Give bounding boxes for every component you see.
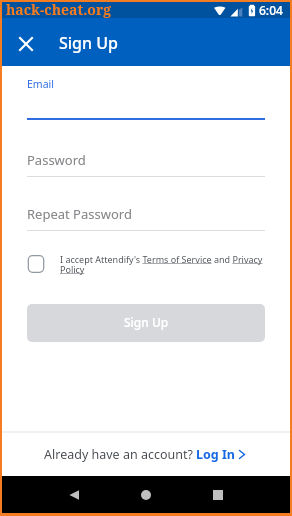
staticText: Sign Up: [59, 32, 118, 54]
staticText: Already have an account?: [44, 446, 193, 463]
staticText: Log In: [196, 446, 235, 463]
button[interactable]: Accept terms and conditions: [27, 255, 45, 273]
staticText: 6:04: [259, 2, 283, 18]
staticText: hack-cheat.org: [6, 0, 112, 19]
staticText: I accept Attendify's Terms of Service an…: [60, 253, 265, 275]
button[interactable]: Home: [130, 479, 162, 511]
staticText: Password: [27, 151, 86, 169]
button[interactable]: Recent apps: [202, 479, 234, 511]
button[interactable]: Already have an account?: [2, 433, 290, 476]
button[interactable]: Sign Up: [27, 304, 265, 342]
staticText: Sign Up: [124, 314, 169, 330]
staticText: Email: [27, 77, 54, 91]
button[interactable]: Close: [11, 29, 41, 59]
button[interactable]: Back: [58, 479, 90, 511]
staticText: Repeat Password: [27, 205, 132, 223]
